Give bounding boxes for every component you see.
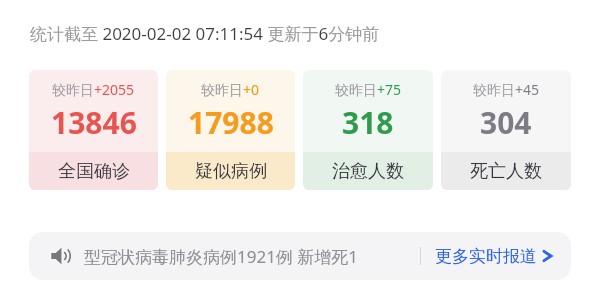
- button[interactable]: 型冠状病毒肺炎病例1921例 新增死1: [84, 232, 420, 280]
- staticText: 疑似病例: [195, 160, 267, 183]
- staticText: 13846: [51, 102, 137, 143]
- staticText: 治愈人数: [332, 160, 404, 183]
- staticText: 304: [480, 102, 532, 143]
- button[interactable]: 较昨日+75: [303, 70, 433, 190]
- staticText: 17988: [188, 102, 274, 143]
- staticText: 较昨日+75: [335, 80, 402, 99]
- staticText: 统计截至 2020-02-02 07:11:54 更新于6分钟前: [30, 22, 380, 45]
- button[interactable]: 较昨日+2055: [29, 70, 158, 190]
- staticText: 较昨日+45: [473, 80, 540, 99]
- staticText: 较昨日+2055: [52, 80, 135, 99]
- button[interactable]: 较昨日+45: [441, 70, 571, 190]
- staticText: 死亡人数: [470, 160, 542, 183]
- staticText: 全国确诊: [58, 160, 130, 183]
- button[interactable]: 更多实时报道: [421, 232, 571, 280]
- staticText: 较昨日+0: [201, 80, 260, 99]
- staticText: 型冠状病毒肺炎病例1921例 新增死1: [84, 245, 359, 268]
- staticText: 318: [342, 102, 394, 143]
- button[interactable]: Play audio news: [50, 245, 72, 267]
- staticText: 更多实时报道: [435, 246, 537, 267]
- button[interactable]: 较昨日+0: [166, 70, 295, 190]
